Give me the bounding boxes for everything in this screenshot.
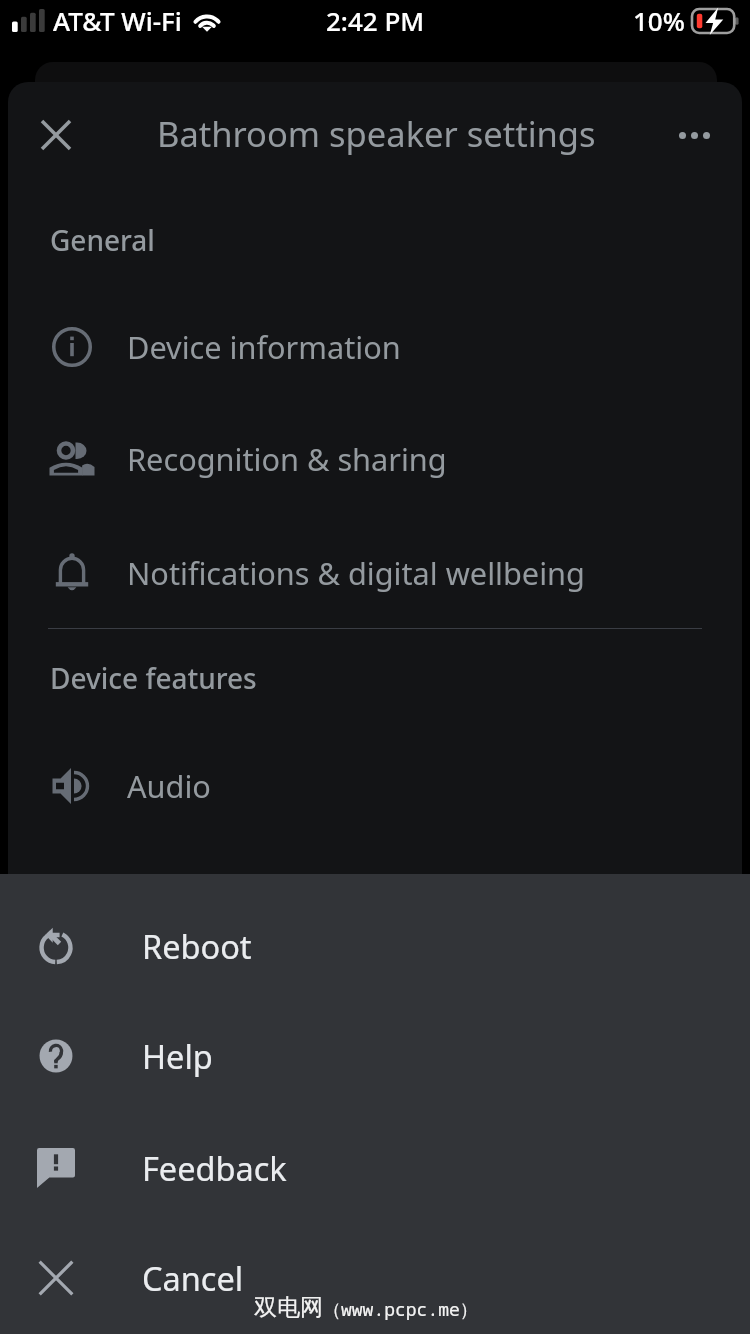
button[interactable]: Close — [24, 103, 88, 167]
staticText: Feedback — [142, 1146, 287, 1190]
staticText: AT&T Wi-Fi — [53, 3, 182, 38]
button[interactable]: Reboot — [0, 891, 750, 1001]
staticText: Notifications & digital wellbeing — [127, 552, 585, 594]
staticText: Reboot — [142, 924, 252, 968]
button[interactable]: Help — [0, 1001, 750, 1111]
staticText: Recognition & sharing — [127, 438, 447, 480]
button[interactable]: Device information — [8, 291, 742, 403]
staticText: Device features — [50, 659, 257, 697]
button[interactable]: Cancel — [0, 1223, 750, 1333]
staticText: Audio — [127, 765, 211, 807]
staticText: Cancel — [142, 1256, 244, 1300]
button[interactable]: Audio — [8, 730, 742, 842]
staticText: General — [50, 221, 155, 259]
staticText: Device information — [127, 326, 401, 368]
staticText: 双电网 — [254, 1293, 323, 1322]
staticText: （www.pcpc.me） — [323, 1297, 478, 1322]
button[interactable]: More options — [662, 103, 726, 167]
staticText: 2:42 PM — [326, 3, 425, 38]
staticText: 10% — [633, 3, 685, 38]
staticText: Bathroom speaker settings — [157, 110, 596, 157]
button[interactable]: Notifications & digital wellbeing — [8, 517, 742, 629]
staticText: Help — [142, 1034, 213, 1078]
button[interactable]: Recognition & sharing — [8, 403, 742, 515]
button[interactable]: Feedback — [0, 1113, 750, 1223]
